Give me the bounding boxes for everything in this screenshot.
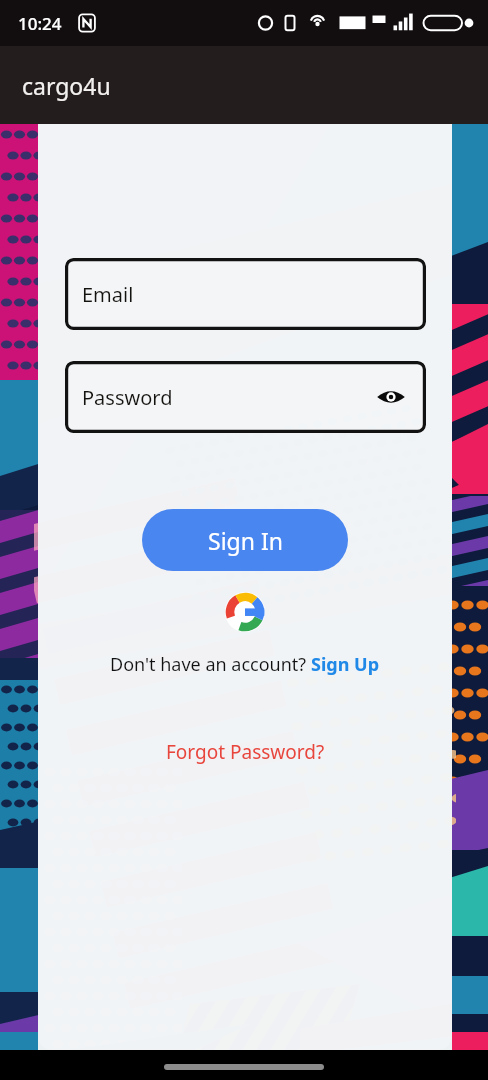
button[interactable]: Show password xyxy=(374,380,408,414)
button[interactable]: Forgot Password? xyxy=(162,739,329,765)
staticText: cargo4u xyxy=(22,70,111,101)
staticText: 10:24 xyxy=(18,12,62,35)
staticText: Sign Up xyxy=(311,652,380,677)
button[interactable]: Email xyxy=(65,258,426,330)
staticText: Don't have an account? xyxy=(110,652,311,677)
button[interactable]: Sign in with Google xyxy=(223,590,267,634)
button[interactable]: Password xyxy=(65,361,426,433)
staticText: Sign In xyxy=(208,525,283,556)
staticText: Email xyxy=(82,281,134,308)
button[interactable]: Sign In xyxy=(142,509,348,571)
button[interactable]: Sign Up xyxy=(311,652,380,677)
staticText: Password xyxy=(82,384,173,411)
staticText: Forgot Password? xyxy=(166,739,325,765)
